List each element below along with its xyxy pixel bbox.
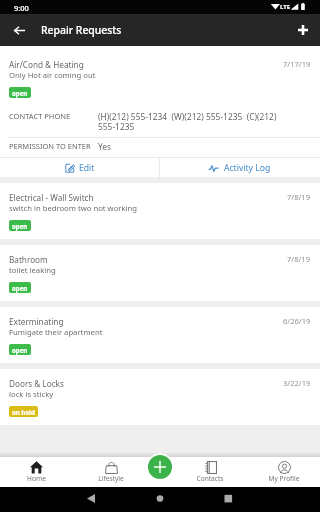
button[interactable]: My Profile [254,457,314,487]
staticText: LTE [280,3,291,11]
staticText: open [12,284,28,292]
staticText: 9:00 [14,3,29,13]
button[interactable]: Doors & Locks [0,369,320,425]
staticText: Air/Cond & Heating [9,59,84,70]
staticText: open [12,89,28,97]
button[interactable]: Air/Cond & Heating [0,46,320,158]
button[interactable]: Home [6,457,66,487]
button[interactable]: Lifestyle [81,457,141,487]
staticText: Electrical - Wall Switch [9,192,94,203]
staticText: 6/26/19 [283,316,311,326]
staticText: Activity Log [224,162,271,174]
button[interactable]: Add repair request [148,455,172,479]
staticText: Home [27,474,46,483]
staticText: open [12,222,28,230]
staticText: Repair Requests [41,23,122,37]
staticText: open [12,346,28,354]
staticText: Doors & Locks [9,378,64,389]
staticText: switch in bedroom two not working [9,203,138,213]
button[interactable]: Activity Log [160,158,320,178]
staticText: Yes [98,141,112,152]
staticText: Exterminating [9,316,64,327]
staticText: Lifestyle [98,474,124,483]
staticText: Bathroom [9,254,48,265]
button[interactable]: Electrical - Wall Switch [0,183,320,239]
staticText: My Profile [268,474,300,483]
staticText: 7/8/19 [287,192,311,202]
staticText: Edit [79,162,95,174]
staticText: PERMISSION TO ENTER [9,141,98,151]
staticText: CONTACT PHONE [9,111,98,121]
staticText: 3/22/19 [283,378,311,388]
button[interactable]: Exterminating [0,307,320,363]
staticText: Fumigate their apartment [9,327,103,337]
staticText: on hold [12,408,35,416]
staticText: Contacts [196,474,224,483]
staticText: (H)(212) 555-1234 (W)(212) 555-1235 (C)(… [98,111,283,132]
button[interactable]: Bathroom [0,245,320,301]
staticText: 7/17/19 [283,59,311,69]
button[interactable]: Edit [0,158,159,178]
staticText: Only Hot air coming out [9,70,96,80]
staticText: 7/8/19 [287,254,311,264]
button[interactable]: Add [290,17,316,43]
button[interactable]: Back [6,17,32,43]
button[interactable]: Contacts [180,457,240,487]
staticText: lock is sticky [9,389,54,399]
staticText: toilet leaking [9,265,56,275]
